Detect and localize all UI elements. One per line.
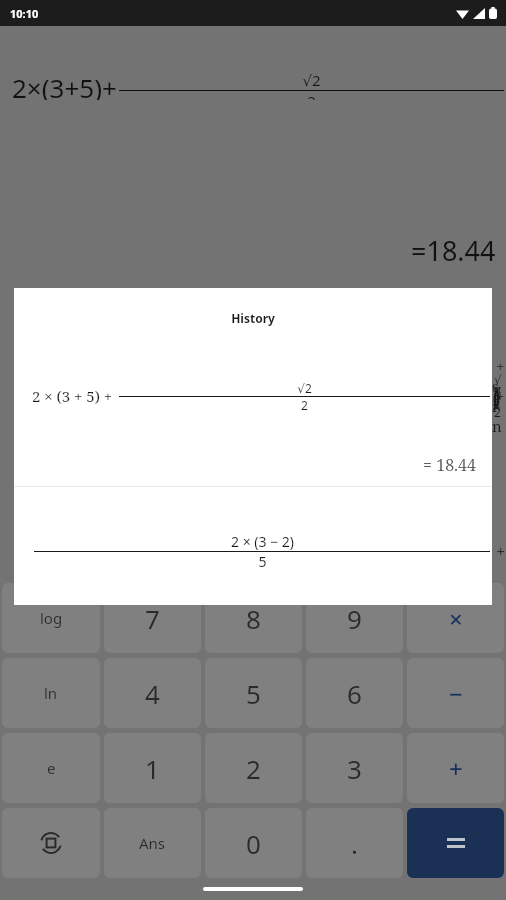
staticText: = 18.44 [14,454,476,476]
staticText: 0 [246,826,261,861]
staticText: . [351,826,358,861]
staticText: × [449,602,463,635]
button[interactable]: log [2,583,100,653]
staticText: √2 [297,380,312,396]
staticText: 6 [347,676,362,711]
button[interactable]: 7 [104,583,201,653]
button[interactable]: 6 [306,658,403,728]
staticText: 2×(3+5)+ [12,70,117,100]
staticText: e [47,758,56,778]
staticText: 2 [301,397,308,413]
button[interactable]: 0 [205,808,302,878]
button[interactable]: − [407,658,504,728]
button[interactable]: 2 [205,733,302,803]
button[interactable]: e [2,733,100,803]
staticText: =18.44 [411,232,496,269]
button[interactable]: 2 × (3 − 2) [14,487,492,605]
button[interactable]: × [407,583,504,653]
staticText: 7 [145,601,160,636]
staticText: 5 [258,552,267,571]
button[interactable] [407,808,504,878]
button[interactable]: 8 [205,583,302,653]
staticText: 10:10 [10,6,39,21]
staticText: log [40,608,63,628]
staticText: 2 × (3 + 5) + [32,386,117,406]
staticText: 4 [145,676,160,711]
staticText: 2 [246,751,261,786]
button[interactable]: + [407,733,504,803]
staticText: 1 [145,751,160,786]
button[interactable]: 2 × (3 + 5) + [14,352,492,476]
staticText: 2 [307,91,316,100]
button[interactable]: 4 [104,658,201,728]
button[interactable]: 5 [205,658,302,728]
button[interactable]: Ans [104,808,201,878]
button[interactable]: ln [2,658,100,728]
button[interactable]: Rotate [2,808,100,878]
staticText: 9 [347,601,362,636]
staticText: Ans [139,833,166,853]
staticText: ln [44,683,58,703]
button[interactable]: 9 [306,583,403,653]
staticText: 8 [246,601,261,636]
staticText: − [449,677,463,710]
button[interactable]: 3 [306,733,403,803]
staticText: 3 [347,751,362,786]
staticText: 2 × (3 − 2) [231,532,294,551]
staticText: + [449,752,463,785]
staticText: √2 [302,70,321,90]
button[interactable]: 1 [104,733,201,803]
staticText: History [14,310,492,326]
staticText: 5 [246,676,261,711]
